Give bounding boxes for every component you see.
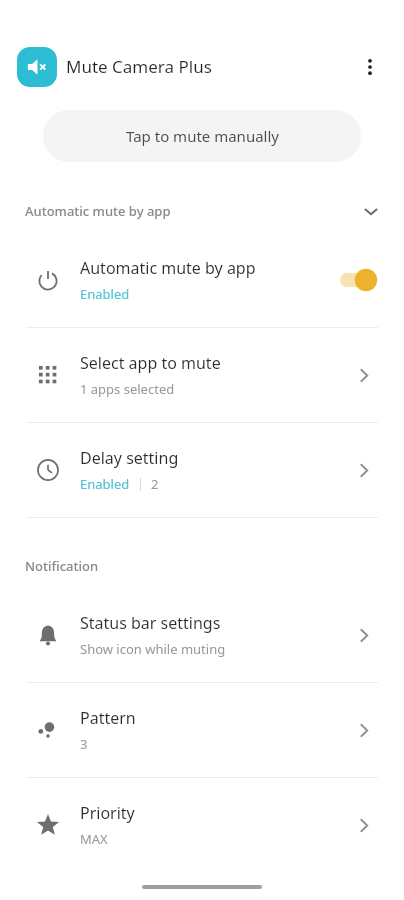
staticText: Show icon while muting xyxy=(80,640,226,658)
staticText: Select app to mute xyxy=(80,352,221,374)
staticText: Enabled xyxy=(80,475,130,493)
button[interactable]: Apps xyxy=(0,328,404,422)
staticText: Notification xyxy=(25,557,99,575)
button[interactable]: Toggle xyxy=(334,263,380,297)
staticText: Priority xyxy=(80,802,135,824)
staticText: 2 xyxy=(151,475,159,493)
button[interactable]: Tap to mute manually xyxy=(43,110,361,162)
staticText: Automatic mute by app xyxy=(25,202,171,220)
staticText: MAX xyxy=(80,830,108,848)
button[interactable]: More options xyxy=(350,47,390,87)
staticText: Delay setting xyxy=(80,447,179,469)
staticText: Mute Camera Plus xyxy=(66,55,212,78)
staticText: 3 xyxy=(80,735,88,753)
other: Priority xyxy=(36,813,60,837)
staticText: Tap to mute manually xyxy=(126,126,279,146)
staticText: Pattern xyxy=(80,707,136,729)
button[interactable]: Power xyxy=(0,233,404,327)
button[interactable]: Automatic mute by app xyxy=(0,189,404,233)
staticText: Enabled xyxy=(80,285,130,303)
button[interactable]: Priority xyxy=(0,778,404,872)
button[interactable]: Notifications xyxy=(0,588,404,682)
staticText: 1 apps selected xyxy=(80,380,175,398)
other: Notifications xyxy=(36,623,60,647)
other: Power xyxy=(36,268,60,292)
staticText: Status bar settings xyxy=(80,612,221,634)
other: Clock xyxy=(36,458,60,482)
button[interactable]: Clock xyxy=(0,423,404,517)
other: Apps xyxy=(36,363,60,387)
button[interactable]: Pattern xyxy=(0,683,404,777)
other: Pattern xyxy=(36,718,60,742)
staticText: Automatic mute by app xyxy=(80,257,256,279)
